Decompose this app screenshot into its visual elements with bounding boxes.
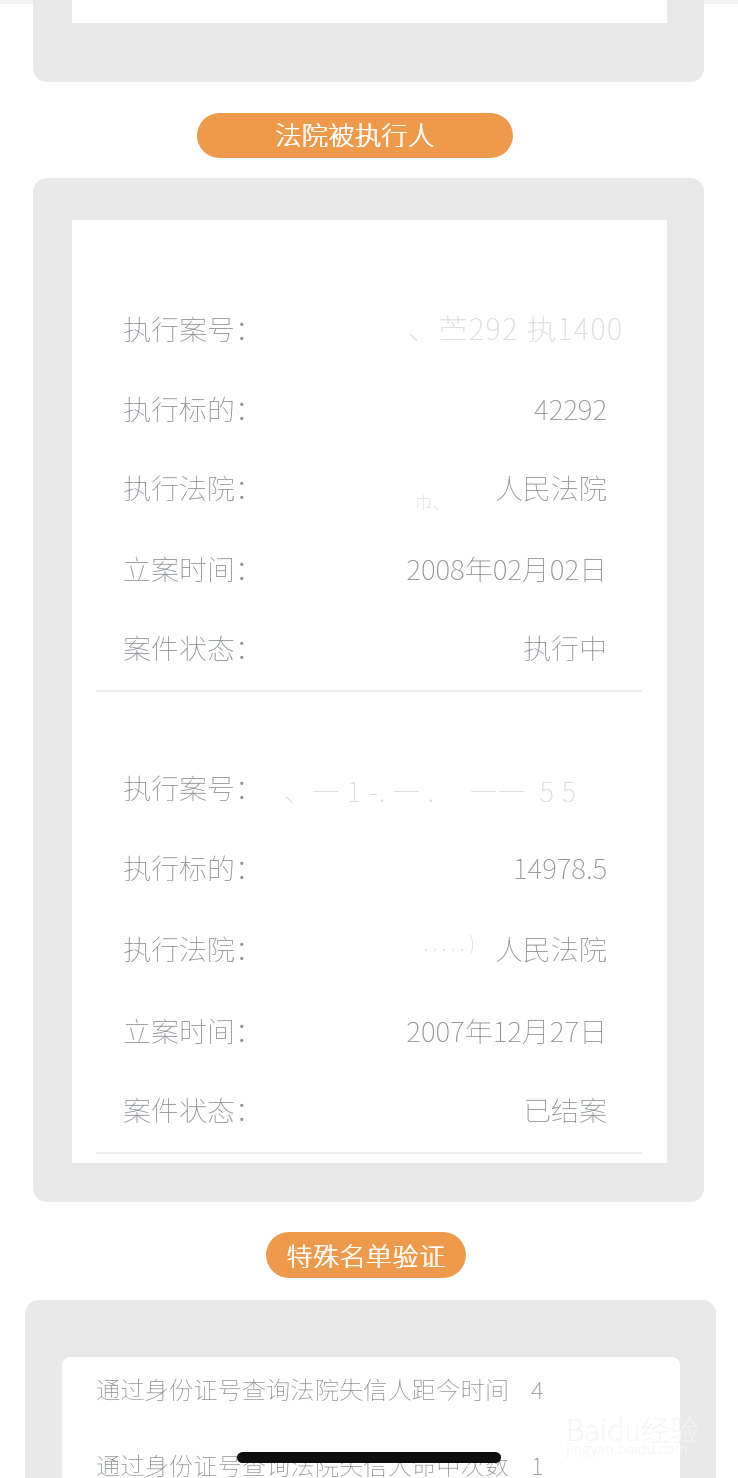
button[interactable]: 立案时间： <box>123 528 607 608</box>
staticText: 、苎292 执1400 <box>408 306 624 348</box>
staticText: 特殊名单验证 <box>287 1236 447 1274</box>
staticText: 执行标的： <box>123 388 264 429</box>
staticText: 已结案 <box>522 1089 607 1130</box>
staticText: 案件状态： <box>123 1089 264 1130</box>
staticText: 立案时间： <box>123 548 264 589</box>
staticText: 42292 <box>534 388 607 429</box>
staticText: 巾、 <box>415 489 449 514</box>
staticText: 、一 1 -. 一 . 一一 5 5 <box>284 771 577 810</box>
staticText: 14978.5 <box>513 847 607 888</box>
button[interactable]: 案件状态： <box>123 1069 607 1149</box>
button[interactable]: 执行标的： <box>123 368 607 448</box>
staticText: 人民法院 <box>494 928 607 969</box>
staticText: 特殊名单验证 <box>286 1236 446 1274</box>
staticText: 2007年12月27日 <box>406 1010 607 1051</box>
staticText: 通过身份证号查询法院失信人命中次数 <box>96 1447 510 1478</box>
staticText: 2008年02月02日 <box>406 548 607 589</box>
button[interactable]: 执行案号： <box>123 747 607 827</box>
button[interactable]: 执行标的： <box>123 827 607 907</box>
staticText: 执行标的： <box>123 847 264 888</box>
staticText: jingyan.baidu.com <box>566 1437 688 1459</box>
staticText: 执行案号： <box>123 767 264 808</box>
button[interactable]: 执行法院： <box>123 447 607 527</box>
button[interactable]: 执行法院： <box>123 908 607 988</box>
staticText: 执行法院： <box>123 467 264 508</box>
staticText: 执行中 <box>522 627 607 668</box>
button[interactable]: 特殊名单验证 <box>266 1232 466 1278</box>
button[interactable]: 执行案号： <box>123 288 607 368</box>
staticText: Baidu经验 <box>566 1407 699 1449</box>
staticText: 法院被执行人 <box>276 115 436 153</box>
staticText: 法院被执行人 <box>275 115 435 153</box>
staticText: 执行法院： <box>123 928 264 969</box>
staticText: 执行案号： <box>123 308 264 349</box>
staticText: 案件状态： <box>123 627 264 668</box>
staticText: 通过身份证号查询法院失信人距今时间 <box>96 1371 510 1406</box>
staticText: 4 <box>531 1371 544 1406</box>
staticText: 1 <box>531 1447 544 1478</box>
button[interactable]: 法院被执行人 <box>197 113 513 158</box>
staticText: . . . . . ) <box>424 928 476 957</box>
staticText: 人民法院 <box>494 467 607 508</box>
button[interactable]: 案件状态： <box>123 607 607 687</box>
staticText: 立案时间： <box>123 1010 264 1051</box>
button[interactable]: 立案时间： <box>123 990 607 1070</box>
